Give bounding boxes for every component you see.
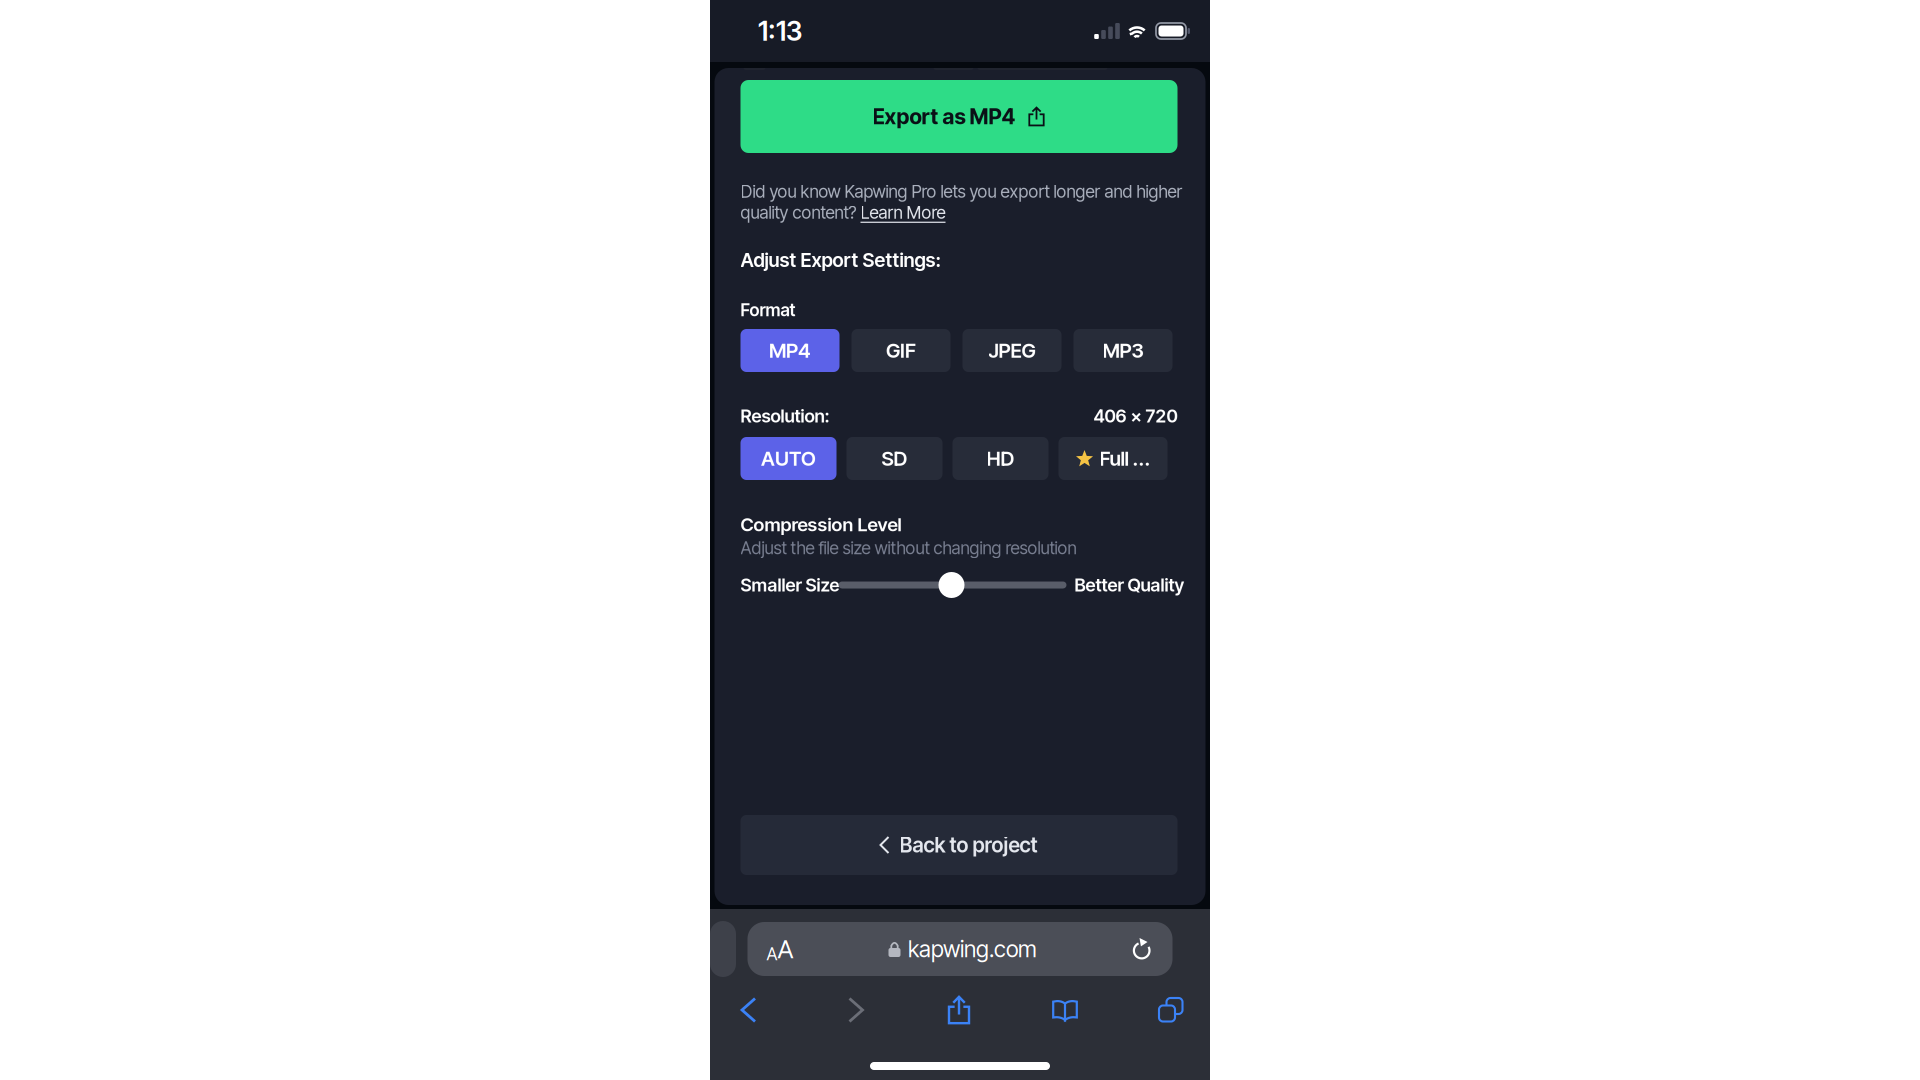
button[interactable]: MP3 — [1073, 329, 1172, 372]
button[interactable]: MP4 — [740, 329, 839, 372]
button[interactable]: SD — [846, 437, 942, 480]
staticText: Did you know Kapwing Pro lets you export… — [740, 181, 1182, 202]
staticText: Learn More — [860, 202, 945, 223]
button[interactable]: Export as MP4 — [740, 80, 1177, 153]
staticText: A — [777, 934, 793, 964]
staticText: Compression Level — [740, 513, 901, 536]
button[interactable]: Tabs — [1140, 990, 1200, 1030]
staticText: Adjust the file size without changing re… — [740, 537, 1076, 558]
button[interactable]: GIF — [851, 329, 950, 372]
staticText: Back to project — [899, 832, 1037, 857]
button[interactable]: Full ... — [1058, 437, 1167, 480]
staticText: kapwing.com — [908, 935, 1037, 963]
staticText: 1:13 — [758, 15, 802, 47]
button[interactable]: Back — [718, 990, 778, 1030]
button[interactable]: Learn More — [860, 202, 945, 223]
staticText: MP3 — [1102, 338, 1143, 363]
button[interactable]: Forward — [826, 990, 886, 1030]
staticText: AUTO — [761, 446, 816, 471]
staticText: SD — [881, 446, 907, 471]
staticText: A — [766, 943, 777, 964]
staticText: GIF — [886, 338, 916, 363]
staticText: Better Quality — [1074, 574, 1184, 596]
button[interactable]: AUTO — [740, 437, 836, 480]
staticText: quality content? — [740, 202, 860, 223]
staticText: MP4 — [769, 338, 811, 363]
staticText: Resolution: — [740, 405, 829, 427]
button[interactable]: Share — [929, 990, 989, 1030]
staticText: Full ... — [1099, 446, 1150, 471]
button[interactable]: A — [747, 922, 1172, 976]
button[interactable]: HD — [952, 437, 1048, 480]
staticText: Adjust Export Settings: — [740, 248, 940, 272]
staticText: 406 × 720 — [1093, 405, 1177, 427]
button[interactable]: JPEG — [962, 329, 1061, 372]
staticText: JPEG — [988, 338, 1035, 363]
staticText: Smaller Size — [740, 574, 839, 596]
button[interactable]: Bookmarks — [1035, 990, 1095, 1030]
staticText: Format — [740, 299, 795, 320]
staticText: Export as MP4 — [872, 104, 1015, 129]
button[interactable]: Back to project — [740, 815, 1177, 875]
staticText: HD — [986, 446, 1014, 471]
